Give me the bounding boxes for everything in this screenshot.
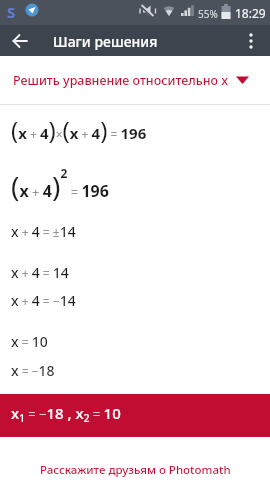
staticText: (x + 4)2 = 196 [11, 165, 109, 205]
staticText: 55% [198, 7, 218, 21]
staticText: x = −18 [11, 361, 55, 380]
staticText: 18:29 [235, 5, 266, 21]
button[interactable]: x1 = −18 , x2 = 10 [0, 394, 270, 437]
staticText: S [7, 2, 16, 22]
staticText: Решить уравнение относительно x [13, 72, 229, 89]
staticText: Расскажите друзьям о Photomath [40, 462, 231, 478]
button[interactable]: Расскажите друзьям о Photomath [0, 462, 270, 478]
staticText: x + 4 = −14 [11, 291, 76, 310]
staticText: x = 10 [11, 332, 48, 351]
staticText: x + 4 = 14 [11, 263, 69, 282]
staticText: x1 = −18 , x2 = 10 [11, 403, 121, 425]
staticText: x + 4 = ±14 [11, 222, 76, 241]
staticText: Шаги решения [53, 32, 158, 51]
button[interactable]: Решить уравнение относительно x [0, 56, 270, 104]
button[interactable] [240, 30, 262, 52]
button[interactable] [6, 27, 34, 55]
staticText: (x + 4)×(x + 4) = 196 [11, 113, 147, 146]
